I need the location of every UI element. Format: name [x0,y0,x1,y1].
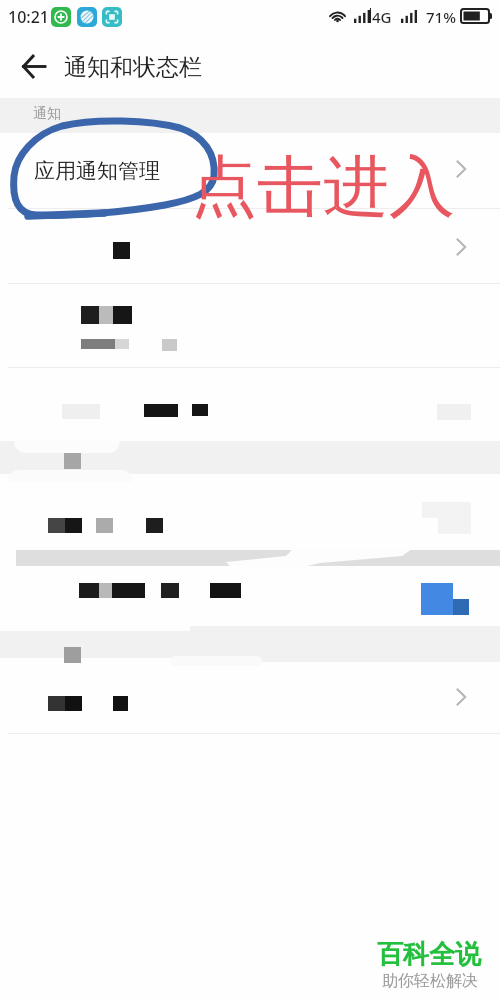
staticText: 点击进入 [191,145,455,228]
button[interactable]: Back [11,44,55,88]
staticText: 10:21 [8,6,49,28]
button[interactable]: Open [456,688,466,706]
staticText: 通知 [33,105,61,123]
staticText: 百科全说 [377,938,481,971]
staticText: 应用通知管理 [34,158,160,184]
staticText: 通知和状态栏 [64,53,202,82]
button[interactable] [0,474,500,550]
button[interactable] [0,566,500,630]
button[interactable]: Open [0,209,500,283]
staticText: 71% [426,7,456,27]
button[interactable]: Open [0,663,500,733]
staticText: 4G [372,7,392,27]
button[interactable] [0,368,500,441]
staticText: 助你轻松解决 [382,971,478,991]
button[interactable]: Open [456,160,466,178]
button[interactable]: Open [456,238,466,256]
button[interactable]: 应用通知管理 [0,133,500,208]
button[interactable] [0,284,500,367]
